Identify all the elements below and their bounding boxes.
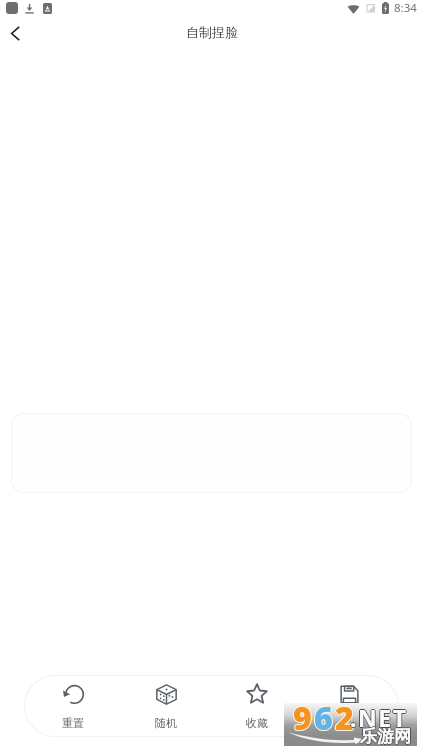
staticText: 收藏 <box>246 716 268 730</box>
staticText: 8:34 <box>394 0 417 16</box>
staticText: 乐游网 <box>361 726 412 747</box>
staticText: 6 <box>314 697 333 740</box>
staticText: .NET <box>350 703 408 734</box>
staticText: 9 <box>293 696 312 739</box>
button[interactable]: Save <box>318 678 380 734</box>
staticText: 6 <box>313 696 332 739</box>
staticText: 2 <box>335 697 354 740</box>
staticText: 2 <box>334 696 353 739</box>
staticText: .NET <box>350 701 408 732</box>
staticText: 9 <box>293 695 312 738</box>
button[interactable]: Random <box>135 678 197 734</box>
staticText: .NET <box>351 702 409 733</box>
staticText: 自制捏脸 <box>186 24 238 40</box>
staticText: 乐游网 <box>360 726 411 747</box>
staticText: .NET <box>349 702 407 733</box>
staticText: 2 <box>336 696 355 739</box>
button[interactable]: Back <box>0 20 30 46</box>
staticText: 乐游网 <box>360 727 411 748</box>
staticText: 2 <box>335 696 354 739</box>
staticText: 乐游网 <box>359 726 410 747</box>
staticText: 9 <box>293 697 312 740</box>
staticText: 随机 <box>155 716 177 730</box>
staticText: 6 <box>314 695 333 738</box>
button[interactable]: Reset <box>42 678 104 734</box>
staticText: 重置 <box>62 716 84 730</box>
staticText: 9 <box>294 696 313 739</box>
staticText: .NET <box>350 702 408 733</box>
staticText: 乐游网 <box>360 725 411 746</box>
staticText: 保存 <box>338 716 360 730</box>
staticText: 9 <box>292 696 311 739</box>
staticText: 2 <box>335 695 354 738</box>
staticText: 6 <box>315 696 334 739</box>
button[interactable]: Favorite <box>226 678 288 734</box>
staticText: 6 <box>314 696 333 739</box>
